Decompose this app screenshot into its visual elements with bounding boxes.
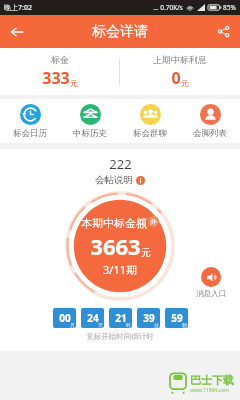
button[interactable]: 标会日历 <box>0 104 60 139</box>
staticText: 晚上7:02 <box>4 3 32 13</box>
staticText: 24 <box>87 311 99 325</box>
staticText: 会脚列表 <box>193 128 227 139</box>
other: 消息入口 <box>201 267 221 287</box>
staticText: 本期中标金额 <box>81 216 147 230</box>
staticText: 竞标开始时间倒计时 <box>86 332 154 341</box>
staticText: 上期中标利息 <box>153 54 207 65</box>
staticText: www.11684.com <box>190 387 229 394</box>
other: Info <box>136 176 145 185</box>
button[interactable]: Back <box>0 15 33 48</box>
staticText: 外 <box>150 218 157 226</box>
button[interactable]: 上期中标利息 <box>120 54 240 89</box>
staticText: 消息入口 <box>196 289 226 298</box>
staticText: 会帖说明 <box>95 174 133 186</box>
button[interactable]: 消息入口 <box>196 267 226 298</box>
button[interactable]: 标会群聊 <box>120 104 180 139</box>
staticText: 3/11期 <box>103 262 137 277</box>
staticText: 00 <box>59 311 71 325</box>
staticText: 巴士下载 <box>190 373 234 387</box>
button[interactable]: Share <box>207 15 240 48</box>
staticText: 21 <box>115 311 127 325</box>
staticText: 秒 <box>182 322 187 328</box>
staticText: 标会日历 <box>13 128 47 139</box>
staticText: 222 <box>109 155 132 173</box>
staticText: ... 0.70K/s <box>153 3 183 12</box>
staticText: 时 <box>126 322 131 328</box>
staticText: 标会详请 <box>92 23 148 41</box>
staticText: 标会群聊 <box>133 128 167 139</box>
staticText: 元 <box>181 78 189 88</box>
staticText: 元 <box>70 78 78 88</box>
button[interactable]: 会帖说明 <box>95 174 145 186</box>
button[interactable]: 中标历史 <box>60 104 120 139</box>
staticText: 39 <box>143 311 155 325</box>
staticText: 85% <box>223 3 236 12</box>
staticText: 元 <box>141 246 151 259</box>
staticText: 分 <box>154 322 159 328</box>
staticText: 3663 <box>90 231 141 261</box>
staticText: 59 <box>171 311 183 325</box>
staticText: 0 <box>171 67 181 89</box>
button[interactable]: 会脚列表 <box>180 104 240 139</box>
button[interactable]: 标金 <box>0 54 119 89</box>
staticText: 标金 <box>51 54 69 65</box>
button[interactable]: 本期中标金额 <box>66 192 174 300</box>
staticText: 月 <box>70 322 75 328</box>
staticText: 333 <box>42 67 70 89</box>
staticText: 天 <box>98 322 103 328</box>
staticText: 中标历史 <box>73 128 107 139</box>
